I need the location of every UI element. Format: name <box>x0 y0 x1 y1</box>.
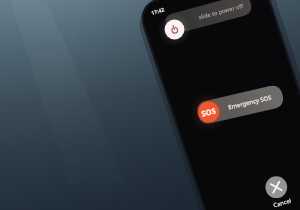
button[interactable]: Slide to power off <box>164 16 254 42</box>
button[interactable]: Emergency SOS <box>197 100 287 126</box>
button[interactable]: Cancel <box>265 175 289 199</box>
